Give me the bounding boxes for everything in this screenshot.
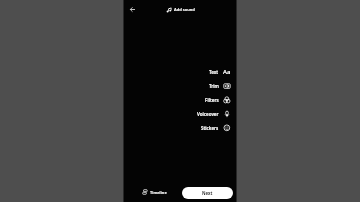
staticText: Voiceover [197,111,219,117]
staticText: Next [202,190,213,196]
button[interactable]: Next [182,187,233,199]
staticText: Filters [205,97,219,103]
button[interactable]: Stickers [201,121,231,135]
button[interactable]: Add sound [166,6,195,12]
staticText: Add sound [174,7,195,12]
staticText: Aa [223,68,231,76]
button[interactable]: Filters [205,93,231,107]
staticText: Trim [209,83,219,89]
button[interactable]: Trim [209,79,231,93]
button[interactable]: Text [209,65,231,79]
button[interactable]: Timeline [142,189,167,195]
button[interactable]: Voiceover [197,107,231,121]
staticText: Text [209,69,219,75]
staticText: Timeline [150,190,167,195]
button[interactable]: Back [126,3,139,16]
staticText: Stickers [201,125,219,131]
